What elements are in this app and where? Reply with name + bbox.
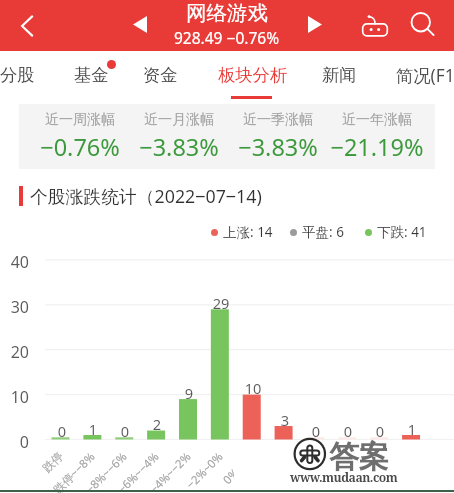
staticText: 0	[296, 421, 336, 441]
staticText: 10	[0, 386, 29, 408]
staticText: 近一月涨幅	[119, 111, 239, 129]
button[interactable]: 个股涨跌统计（2022‒07‒14)	[19, 184, 262, 208]
staticText: −4%~−2%	[98, 449, 194, 493]
button[interactable]: Back	[7, 6, 47, 46]
button[interactable]: Previous sector	[126, 10, 154, 38]
staticText: 新闻	[322, 64, 357, 86]
staticText: 网络游戏	[186, 0, 268, 26]
staticText: 跌停~−8%	[2, 449, 98, 493]
staticText: −8%~−6%	[34, 449, 130, 493]
staticText: 6%~8%	[257, 449, 353, 493]
button[interactable]: 平盘: 6	[290, 223, 344, 241]
staticText: −3.83%	[218, 131, 338, 163]
staticText: 分股	[0, 64, 35, 86]
staticText: 资金	[143, 64, 178, 86]
staticText: 近一季涨幅	[218, 111, 338, 129]
staticText: 3	[265, 410, 305, 430]
staticText: 928.49 −0.76%	[174, 27, 280, 48]
staticText: −0.76%	[20, 131, 140, 163]
staticText: 近一周涨幅	[20, 111, 140, 129]
staticText: 20	[0, 341, 29, 363]
staticText: 2%~4%	[194, 449, 290, 493]
staticText: 2	[137, 414, 177, 434]
staticText: 0	[328, 421, 368, 441]
staticText: 4%~6%	[225, 449, 321, 493]
staticText: 1	[73, 419, 113, 439]
staticText: 平盘: 6	[302, 223, 344, 241]
staticText: −2%~0%	[130, 449, 226, 493]
staticText: 0	[105, 421, 145, 441]
button[interactable]: Assistant	[357, 7, 393, 43]
staticText: 答案	[329, 438, 389, 476]
button[interactable]: 上涨: 14	[211, 223, 273, 241]
staticText: 板块分析	[218, 64, 288, 86]
staticText: 1	[392, 419, 432, 439]
button[interactable]: Next sector	[301, 10, 329, 38]
button[interactable]: 资金	[143, 64, 178, 86]
staticText: 下跌: 41	[377, 223, 427, 241]
button[interactable]: 分股	[0, 64, 35, 86]
staticText: −6%~−4%	[66, 449, 162, 493]
staticText: 个股涨跌统计（2022‒07‒14)	[30, 184, 262, 208]
staticText: 0%~2%	[162, 449, 258, 493]
staticText: 简况(F10	[396, 64, 454, 88]
staticText: −3.83%	[119, 131, 239, 163]
staticText: 近一年涨幅	[317, 111, 437, 129]
staticText: 0	[42, 421, 82, 441]
staticText: 涨停	[321, 449, 416, 493]
staticText: 跌停	[0, 449, 66, 493]
staticText: 29	[201, 293, 241, 313]
staticText: 0	[360, 421, 400, 441]
staticText: 上涨: 14	[223, 223, 273, 241]
staticText: 10	[233, 378, 273, 398]
staticText: −21.19%	[317, 131, 437, 163]
button[interactable]: 板块分析	[218, 64, 288, 86]
staticText: 8%~涨停	[289, 449, 385, 493]
staticText: 40	[0, 251, 29, 273]
button[interactable]: 基金	[74, 64, 109, 86]
staticText: www.mudaan.com	[290, 469, 398, 486]
button[interactable]: Search	[404, 6, 442, 44]
staticText: 30	[0, 296, 29, 318]
button[interactable]: 简况(F10	[396, 64, 454, 88]
staticText: 基金	[74, 64, 109, 86]
button[interactable]: 下跌: 41	[365, 223, 427, 241]
staticText: 9	[169, 383, 209, 403]
button[interactable]: 新闻	[322, 64, 357, 86]
staticText: 0	[0, 431, 29, 453]
